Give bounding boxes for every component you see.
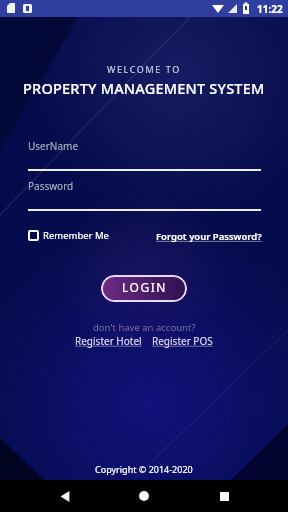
- staticText: WELCOME TO: [107, 63, 181, 75]
- button[interactable]: [50, 481, 80, 511]
- staticText: 11:22: [257, 2, 283, 16]
- button[interactable]: Register Hotel: [75, 334, 145, 348]
- button[interactable]: [129, 481, 159, 511]
- button[interactable]: Register POS: [152, 334, 213, 348]
- button[interactable]: LOGIN: [101, 275, 187, 302]
- button[interactable]: Forgot your Password?: [156, 230, 262, 243]
- staticText: Password: [28, 179, 74, 193]
- staticText: Remember Me: [43, 229, 109, 242]
- staticText: Copyright © 2014-2020: [95, 463, 193, 475]
- button[interactable]: Remember Me: [28, 229, 109, 242]
- button[interactable]: [209, 481, 239, 511]
- staticText: don't have an account?: [93, 321, 196, 334]
- staticText: UserName: [28, 139, 79, 153]
- staticText: LOGIN: [122, 279, 167, 295]
- staticText: PROPERTY MANAGEMENT SYSTEM: [23, 78, 265, 98]
